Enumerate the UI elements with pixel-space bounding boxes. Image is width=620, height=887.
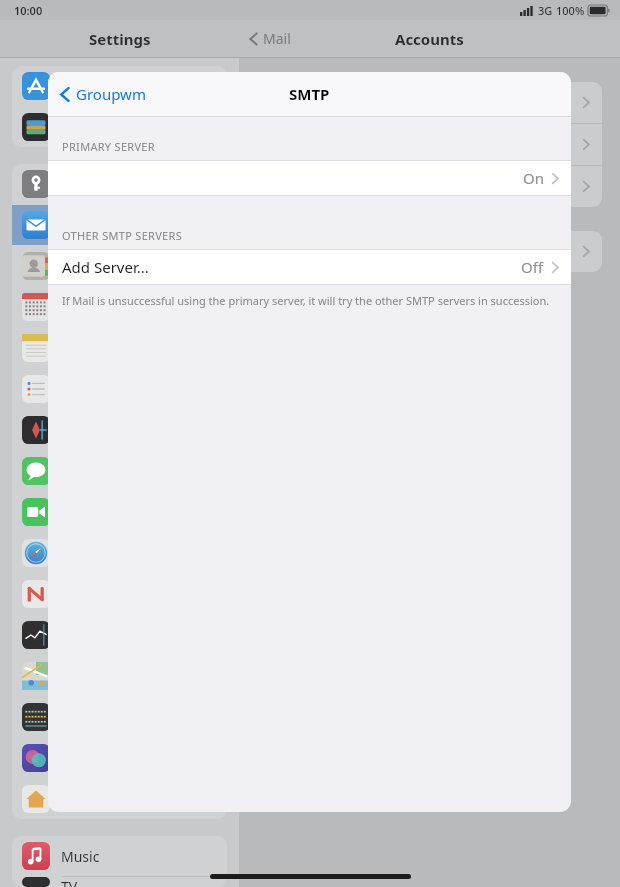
button[interactable]: Translate bbox=[12, 697, 227, 737]
button[interactable]: Messages bbox=[12, 451, 227, 491]
button[interactable]: News bbox=[12, 574, 227, 614]
staticText: TV bbox=[61, 877, 78, 887]
staticText: App Store bbox=[61, 77, 126, 96]
staticText: Contacts bbox=[61, 257, 119, 276]
button[interactable]: Groupwm bbox=[48, 72, 158, 116]
button[interactable]: Stocks bbox=[12, 615, 227, 655]
button[interactable]: Music bbox=[12, 836, 227, 876]
staticText: Fetch bbox=[536, 242, 572, 261]
staticText: Settings bbox=[89, 29, 151, 49]
staticText: 10:00 bbox=[14, 3, 43, 18]
staticText: Add Server... bbox=[62, 257, 149, 277]
staticText: Music bbox=[61, 847, 100, 866]
staticText: SMTP bbox=[289, 84, 330, 104]
staticText: Mail bbox=[263, 29, 291, 48]
button[interactable]: Maps bbox=[12, 656, 227, 696]
button[interactable]: Contacts bbox=[12, 246, 227, 286]
button[interactable]: Shortcuts bbox=[12, 738, 227, 778]
staticText: Off bbox=[521, 257, 544, 277]
button[interactable]: Calendar bbox=[12, 287, 227, 327]
button[interactable]: Wallet bbox=[12, 107, 227, 147]
button[interactable]: Passwords bbox=[12, 164, 227, 204]
staticText: 3G bbox=[538, 3, 553, 18]
button[interactable]: Home bbox=[12, 779, 227, 819]
button[interactable]: Add Server... bbox=[48, 250, 571, 284]
staticText: OTHER SMTP SERVERS bbox=[62, 228, 182, 243]
staticText: Groupwm bbox=[76, 84, 146, 104]
button[interactable]: TV bbox=[12, 877, 227, 887]
staticText: On bbox=[523, 168, 544, 188]
staticText: Accounts bbox=[395, 29, 464, 49]
staticText: Calendar bbox=[61, 298, 121, 317]
button[interactable]: FaceTime bbox=[12, 492, 227, 532]
staticText: PRIMARY SERVER bbox=[62, 139, 155, 154]
staticText: If Mail is unsuccessful using the primar… bbox=[62, 293, 550, 308]
staticText: Mail bbox=[61, 216, 89, 235]
button[interactable]: Freeform bbox=[12, 410, 227, 450]
button[interactable]: On bbox=[48, 161, 571, 195]
button[interactable]: App Store bbox=[12, 66, 227, 106]
button[interactable]: Reminders bbox=[12, 369, 227, 409]
button[interactable]: Mail bbox=[12, 205, 227, 245]
button[interactable]: Safari bbox=[12, 533, 227, 573]
staticText: 100% bbox=[556, 3, 585, 18]
button[interactable]: Notes bbox=[12, 328, 227, 368]
